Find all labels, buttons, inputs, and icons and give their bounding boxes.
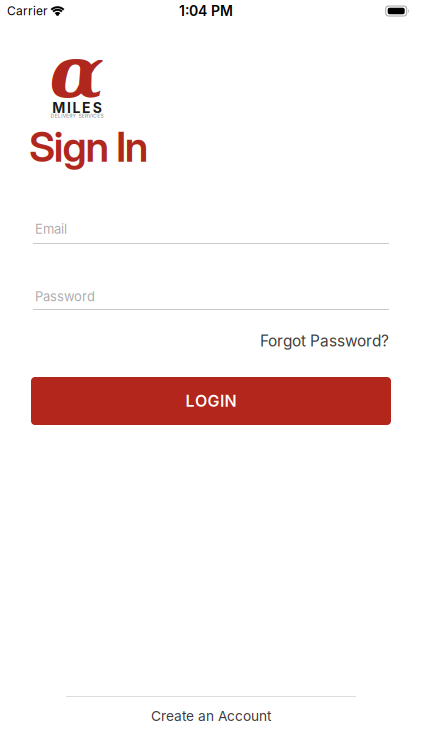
staticText: LOGIN bbox=[185, 391, 236, 411]
staticText: Password bbox=[35, 289, 95, 304]
button[interactable]: Create an Account bbox=[0, 707, 422, 725]
staticText: DELIVERY SERVICES bbox=[50, 113, 104, 119]
button[interactable]: Email bbox=[33, 219, 389, 244]
button[interactable]: Password bbox=[33, 285, 389, 310]
staticText: MILES bbox=[52, 99, 102, 116]
staticText: 1:04 PM bbox=[179, 2, 233, 19]
button[interactable]: LOGIN bbox=[31, 377, 391, 425]
staticText: α bbox=[49, 30, 104, 114]
staticText: Email bbox=[35, 221, 67, 237]
button[interactable]: Forgot Password? bbox=[0, 331, 389, 351]
staticText: Carrier bbox=[7, 4, 48, 18]
staticText: Sign In bbox=[29, 122, 149, 172]
staticText: Forgot Password? bbox=[260, 332, 389, 350]
staticText: Create an Account bbox=[151, 708, 271, 724]
